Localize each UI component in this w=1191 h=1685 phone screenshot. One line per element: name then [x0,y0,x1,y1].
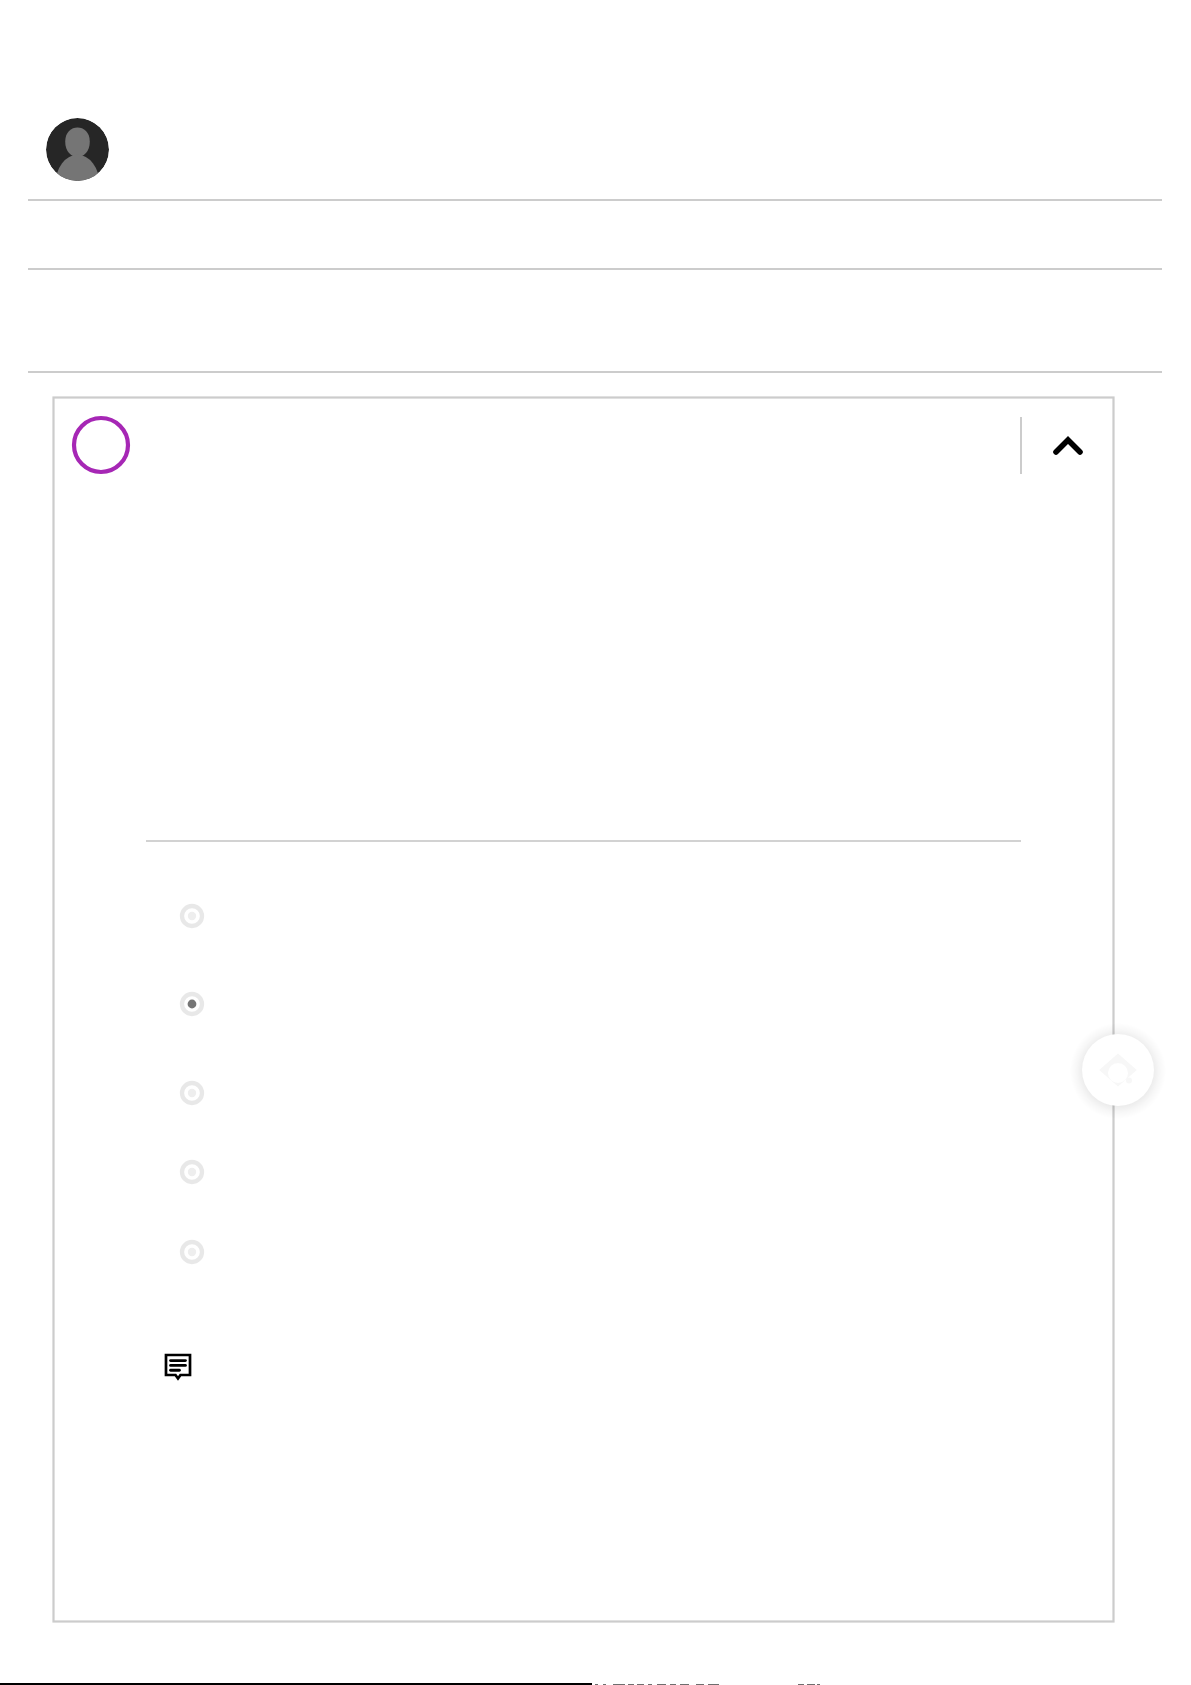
button[interactable]: Add question [1082,1034,1154,1106]
button[interactable]: Option 2 [168,980,1008,1028]
button[interactable]: Collapse question [1041,419,1095,473]
button[interactable]: Account [46,118,109,181]
button[interactable]: Add feedback [165,1353,191,1379]
